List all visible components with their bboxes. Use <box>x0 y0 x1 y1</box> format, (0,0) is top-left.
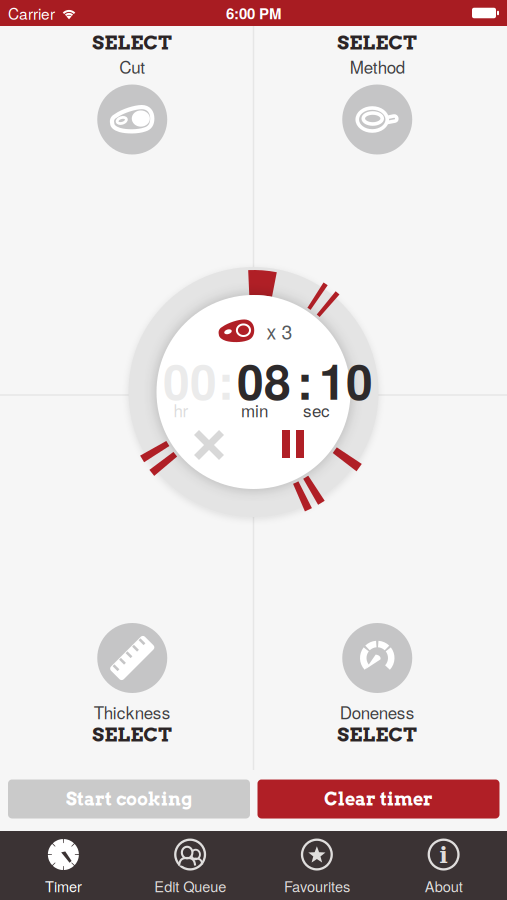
button[interactable]: Thickness <box>0 610 253 770</box>
staticText: Doneness <box>340 700 415 724</box>
button[interactable]: Doneness <box>254 610 507 770</box>
button[interactable]: SELECT <box>0 26 253 198</box>
staticText: : <box>297 346 313 414</box>
button[interactable]: SELECT <box>254 26 507 198</box>
staticText: Clear timer <box>324 788 433 810</box>
button[interactable]: Timer <box>0 831 127 900</box>
staticText: sec <box>303 398 330 422</box>
button[interactable]: Clear timer <box>257 779 499 818</box>
staticText: Favourites <box>284 875 350 896</box>
staticText: Start cooking <box>66 788 192 810</box>
button[interactable]: Start cooking <box>8 779 250 818</box>
staticText: 10 <box>319 346 373 414</box>
staticText: Thickness <box>94 700 171 724</box>
staticText: : <box>218 346 234 414</box>
button[interactable]: Cancel timer <box>195 431 223 459</box>
button[interactable]: Pause timer <box>278 428 308 460</box>
staticText: Carrier <box>8 2 55 24</box>
staticText: Timer <box>45 875 82 896</box>
button[interactable]: i <box>380 831 507 900</box>
staticText: SELECT <box>92 723 172 746</box>
button[interactable]: Favourites <box>253 831 380 900</box>
staticText: min <box>241 398 268 422</box>
button[interactable]: Edit Queue <box>127 831 254 900</box>
staticText: Cut <box>119 54 145 79</box>
staticText: 00 <box>163 346 217 414</box>
staticText: Method <box>350 54 405 79</box>
staticText: SELECT <box>92 31 172 54</box>
staticText: SELECT <box>337 723 417 746</box>
staticText: hr <box>173 398 188 422</box>
staticText: 08 <box>237 346 291 414</box>
staticText: i <box>439 842 448 868</box>
staticText: 6:00 PM <box>226 2 281 24</box>
staticText: x 3 <box>266 317 292 345</box>
staticText: About <box>425 875 463 896</box>
staticText: SELECT <box>337 31 417 54</box>
staticText: Edit Queue <box>154 875 226 896</box>
